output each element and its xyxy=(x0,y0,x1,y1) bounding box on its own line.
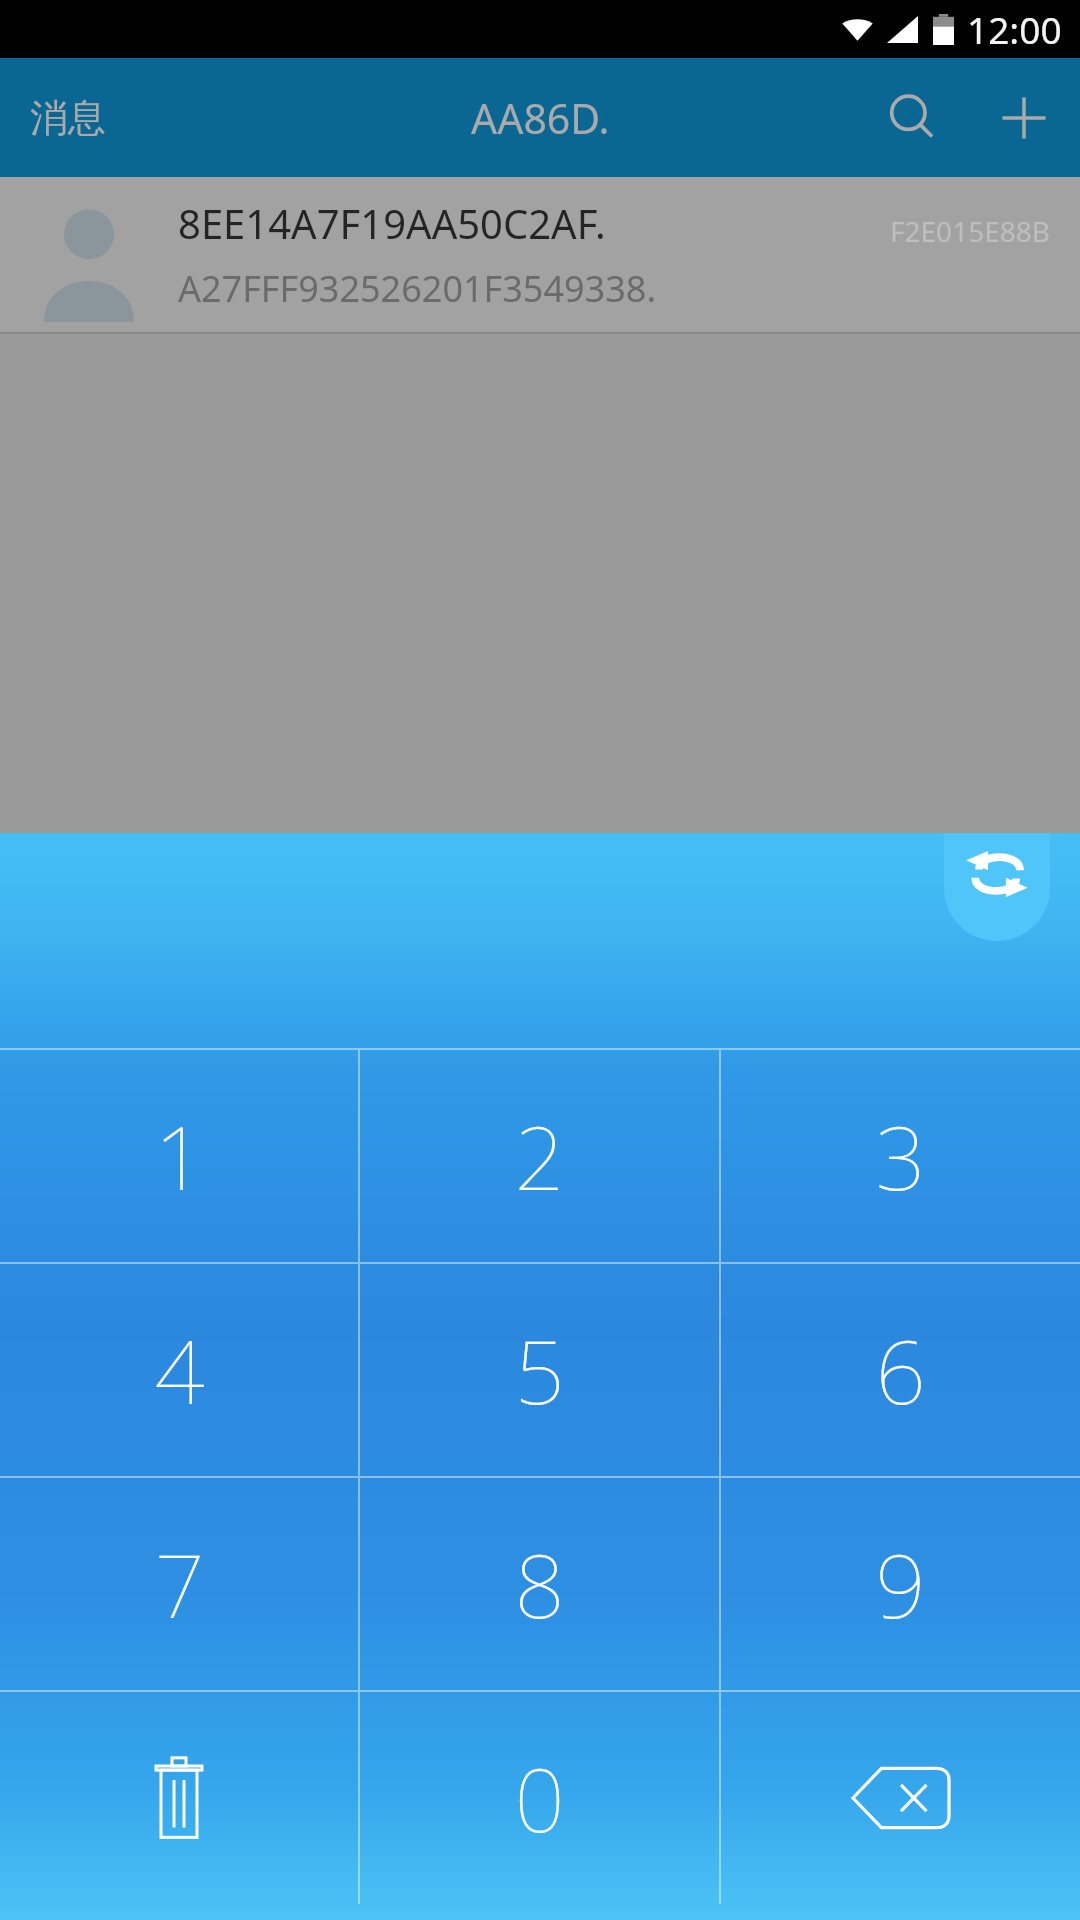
button[interactable]: 4 xyxy=(0,1264,358,1476)
staticText: 0 xyxy=(514,1738,565,1858)
staticText: AA86D. xyxy=(471,90,610,146)
staticText: 2 xyxy=(514,1096,565,1216)
staticText: 消息 xyxy=(30,94,106,142)
staticText: 1 xyxy=(154,1096,205,1216)
button[interactable]: Switch keyboard xyxy=(944,833,1050,941)
button[interactable]: 8 xyxy=(360,1478,719,1690)
staticText: 5 xyxy=(514,1310,565,1430)
button[interactable]: 8EE14A7F19AA50C2AF. xyxy=(0,177,1080,332)
staticText: 8 xyxy=(514,1524,565,1644)
staticText: A27FFF932526201F3549338. xyxy=(178,264,657,313)
staticText: F2E015E88B xyxy=(890,212,1050,250)
button[interactable]: 6 xyxy=(721,1264,1080,1476)
staticText: 4 xyxy=(154,1310,205,1430)
staticText: 9 xyxy=(875,1524,926,1644)
button[interactable]: 0 xyxy=(360,1692,719,1904)
button[interactable]: 5 xyxy=(360,1264,719,1476)
button[interactable]: 9 xyxy=(721,1478,1080,1690)
staticText: 12:00 xyxy=(967,4,1062,54)
button[interactable]: 消息 xyxy=(0,58,136,177)
staticText: 8EE14A7F19AA50C2AF. xyxy=(178,196,606,250)
staticText: 7 xyxy=(154,1524,205,1644)
button[interactable]: 7 xyxy=(0,1478,358,1690)
button[interactable]: 3 xyxy=(721,1050,1080,1262)
staticText: 6 xyxy=(875,1310,926,1430)
staticText: 3 xyxy=(875,1096,926,1216)
button[interactable]: 1 xyxy=(0,1050,358,1262)
button[interactable]: Search xyxy=(856,58,968,177)
button[interactable]: Clear xyxy=(0,1692,358,1904)
button[interactable]: 2 xyxy=(360,1050,719,1262)
button[interactable]: New message xyxy=(968,58,1080,177)
button[interactable]: Backspace xyxy=(721,1692,1080,1904)
